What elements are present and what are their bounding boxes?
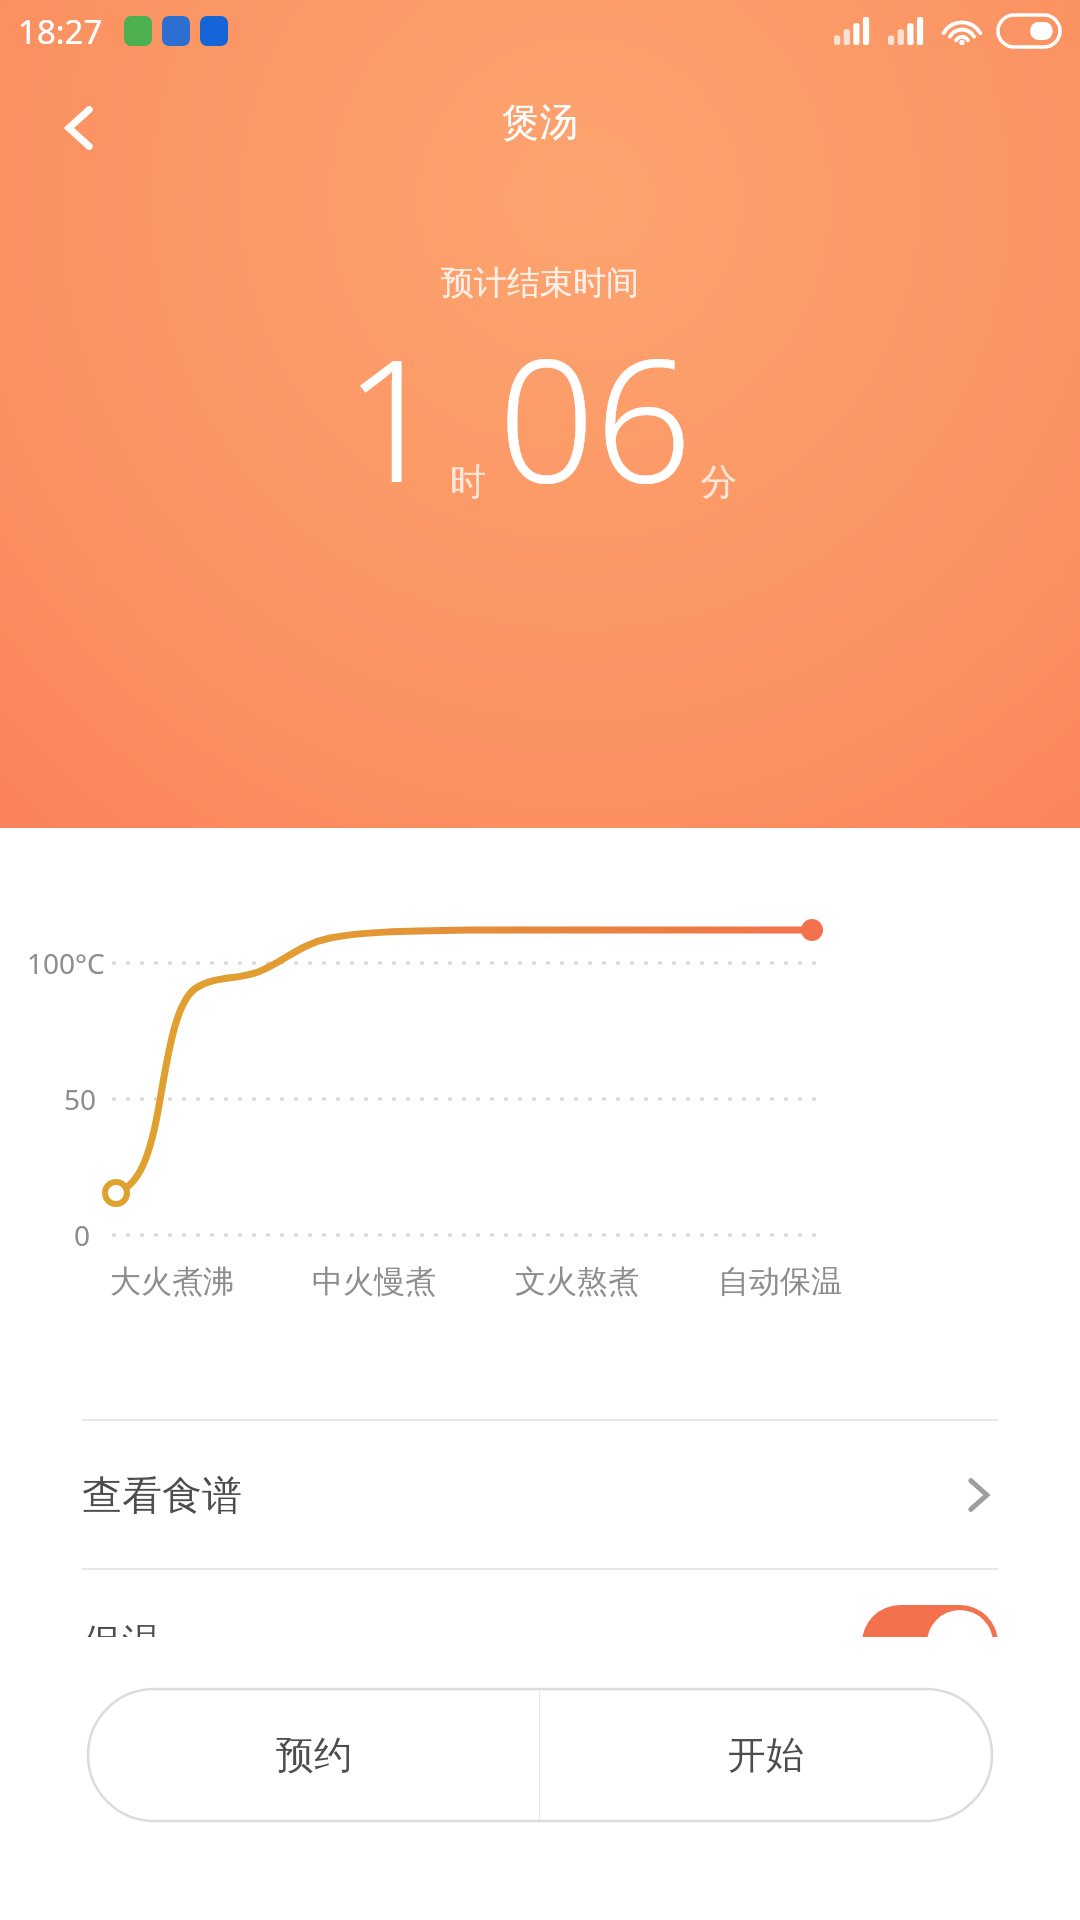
staticText: 煲汤 bbox=[502, 98, 578, 146]
button[interactable]: Back bbox=[24, 72, 136, 184]
staticText: 0 bbox=[74, 1216, 91, 1254]
button[interactable]: 保温 bbox=[0, 1570, 1080, 1715]
staticText: 1 bbox=[344, 300, 442, 532]
staticText: 大火煮沸 bbox=[110, 1262, 234, 1301]
staticText: 50 bbox=[64, 1080, 97, 1118]
button[interactable]: 查看食谱 bbox=[0, 1421, 1080, 1569]
staticText: 中火慢煮 bbox=[312, 1262, 436, 1301]
staticText: 100°C bbox=[27, 944, 105, 982]
staticText: 预计结束时间 bbox=[441, 262, 639, 304]
staticText: 06 bbox=[498, 300, 693, 532]
staticText: 分 bbox=[701, 459, 737, 504]
staticText: 18:27 bbox=[18, 9, 103, 54]
staticText: 保温 bbox=[82, 1618, 162, 1668]
button[interactable]: 开始 bbox=[540, 1689, 992, 1821]
staticText: 文火熬煮 bbox=[515, 1262, 639, 1301]
staticText: 预约 bbox=[276, 1731, 352, 1779]
staticText: 时 bbox=[450, 459, 486, 504]
button[interactable]: 预约 bbox=[88, 1689, 539, 1821]
button[interactable]: Keep warm toggle bbox=[862, 1605, 998, 1681]
staticText: 开始 bbox=[728, 1731, 804, 1779]
staticText: 查看食谱 bbox=[82, 1470, 242, 1520]
staticText: 自动保温 bbox=[718, 1262, 842, 1301]
